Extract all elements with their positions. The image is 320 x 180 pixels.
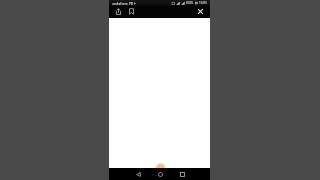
button[interactable]: Recents (176, 168, 188, 180)
button[interactable]: Back (132, 168, 144, 180)
button[interactable]: Share (113, 6, 124, 17)
button[interactable]: Home (154, 168, 166, 180)
button[interactable]: Close (195, 6, 206, 17)
staticText: vodafone PB (112, 1, 134, 6)
staticText: 13:05 (199, 1, 207, 5)
staticText: 100% (186, 1, 194, 5)
button[interactable]: Bookmark (126, 6, 137, 17)
